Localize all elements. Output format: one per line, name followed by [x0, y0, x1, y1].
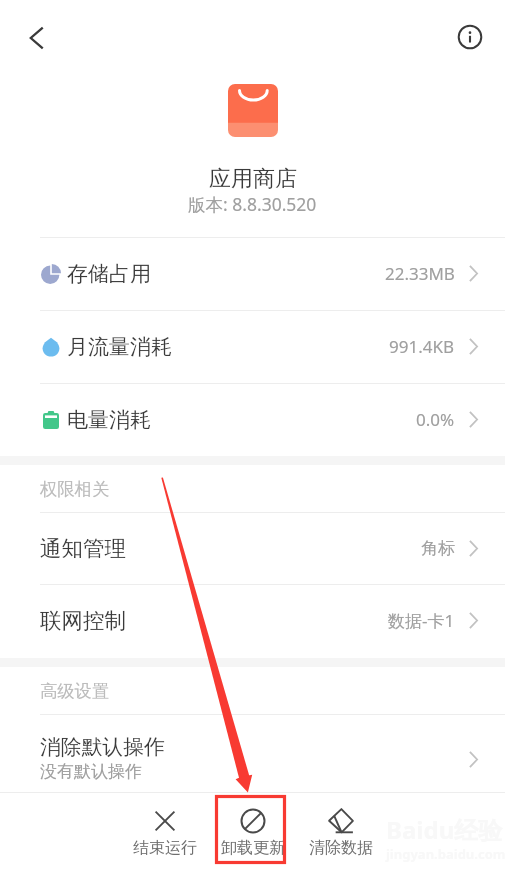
button[interactable]: Back: [13, 15, 59, 61]
button[interactable]: 月流量消耗: [0, 310, 505, 383]
staticText: 0.0%: [416, 408, 455, 431]
staticText: 22.33MB: [385, 262, 455, 285]
button[interactable]: 存储占用: [0, 237, 505, 310]
button[interactable]: 联网控制: [0, 584, 505, 657]
staticText: 卸载更新: [221, 838, 285, 858]
button[interactable]: 卸载更新: [217, 806, 289, 858]
staticText: 消除默认操作: [40, 734, 165, 760]
staticText: 权限相关: [40, 478, 110, 500]
staticText: 电量消耗: [67, 407, 151, 433]
staticText: 991.4KB: [389, 335, 455, 358]
staticText: 高级设置: [40, 680, 110, 702]
button[interactable]: 结束运行: [129, 806, 201, 858]
button[interactable]: 清除数据: [305, 806, 377, 858]
staticText: 清除数据: [309, 838, 373, 858]
button[interactable]: 电量消耗: [0, 383, 505, 456]
button[interactable]: 消除默认操作: [0, 714, 505, 792]
staticText: 月流量消耗: [67, 334, 172, 360]
staticText: 应用商店: [209, 165, 297, 193]
staticText: 存储占用: [67, 261, 151, 287]
staticText: Baidu经验: [386, 813, 503, 846]
staticText: 数据-卡1: [388, 609, 455, 632]
staticText: 角标: [421, 538, 455, 559]
staticText: 没有默认操作: [40, 761, 142, 782]
button[interactable]: Info: [447, 14, 493, 60]
staticText: 联网控制: [40, 607, 126, 634]
staticText: 通知管理: [40, 535, 126, 562]
staticText: 版本: 8.8.30.520: [188, 192, 317, 216]
button[interactable]: 通知管理: [0, 512, 505, 585]
staticText: 结束运行: [133, 838, 197, 858]
